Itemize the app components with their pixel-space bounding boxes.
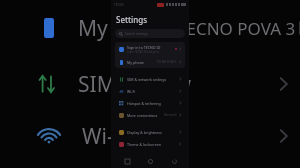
button[interactable]: Sign in to TECNO ID [115, 42, 185, 56]
staticText: TECNO [114, 3, 124, 7]
button[interactable]: Search settings [115, 29, 185, 38]
staticText: Hotspot & tethering [127, 101, 161, 106]
staticText: Learn TECNO ID and get a personalised ex… [127, 50, 175, 54]
button[interactable]: Display & brightness [115, 126, 185, 138]
button[interactable]: Back [166, 154, 182, 168]
staticText: Wi-Fi [127, 89, 136, 94]
staticText: My phone [78, 14, 177, 43]
button[interactable]: Hotspot & tethering [115, 97, 185, 109]
button[interactable]: Wi-Fi [115, 85, 185, 97]
button[interactable]: SIM & netw [0, 56, 300, 112]
staticText: Search settings [125, 32, 148, 36]
staticText: More connections [127, 113, 158, 118]
staticText: Settings [116, 14, 148, 25]
staticText: TECNO POVA 3 [177, 17, 296, 40]
button[interactable]: More connections [115, 109, 185, 121]
button[interactable]: Theme & lockscreen [115, 138, 185, 150]
staticText: SIM & netw [78, 70, 191, 99]
staticText: Bluetooth [164, 113, 177, 117]
staticText: Sign in to TECNO ID [127, 45, 161, 50]
staticText: My phone [127, 60, 144, 65]
staticText: TECNO POVA 3 [157, 60, 177, 64]
button[interactable]: Recents [119, 154, 135, 168]
button[interactable]: Wi-Fi [0, 112, 300, 160]
staticText: Display & brightness [127, 130, 162, 135]
staticText: Theme & lockscreen [127, 142, 162, 147]
button[interactable]: My phone [115, 56, 185, 68]
button[interactable]: SIM & network settings [115, 73, 185, 85]
button[interactable]: Home [142, 154, 158, 168]
staticText: Wi-Fi [82, 122, 131, 151]
staticText: SIM & network settings [127, 77, 167, 82]
button[interactable]: My phone [0, 0, 300, 56]
